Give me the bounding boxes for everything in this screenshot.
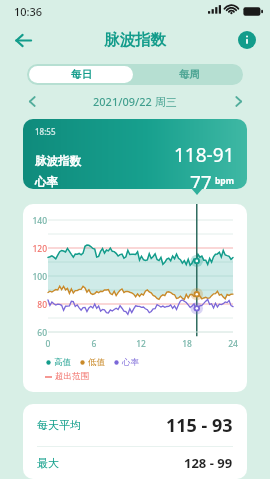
staticText: 115 - 93 [166,413,233,438]
staticText: 6 [88,338,100,350]
staticText: 脉波指数 [104,30,166,50]
staticText: 100 [23,271,47,283]
staticText: 120 [23,243,47,255]
staticText: 18:55 [35,126,56,137]
staticText: 脉波指数 [35,154,81,168]
staticText: 每日 [71,68,92,81]
staticText: 118-91 [174,142,235,168]
staticText: 77 [190,170,212,189]
button[interactable]: 每天平均 [23,404,247,446]
staticText: 超出范围 [55,371,89,382]
staticText: 高值 [54,357,71,368]
button[interactable]: 每周 [135,64,243,85]
staticText: 12 [135,338,147,350]
staticText: 10:36 [14,4,43,19]
staticText: 60 [23,327,47,339]
button[interactable]: Info [232,25,262,55]
button[interactable]: 最大 [23,447,247,479]
staticText: 140 [23,215,47,227]
staticText: 18 [181,338,193,350]
button[interactable]: Previous day [22,91,42,111]
button[interactable]: Back [6,23,40,57]
button[interactable]: 每日 [29,66,133,83]
staticText: 0 [42,338,54,350]
staticText: bpm [215,175,235,187]
staticText: 低值 [88,357,105,368]
staticText: 2021/09/22 周三 [93,94,177,109]
staticText: 24 [227,338,239,350]
staticText: 每天平均 [37,418,81,432]
staticText: 128 - 99 [184,454,233,472]
button[interactable]: Next day [228,91,248,111]
button[interactable]: 18:55 [23,119,247,189]
staticText: 心率 [35,175,58,189]
staticText: 每周 [179,68,200,81]
staticText: 80 [23,299,47,311]
staticText: 最大 [37,456,59,470]
staticText: 心率 [122,357,139,368]
button[interactable]: 140 [23,204,247,392]
